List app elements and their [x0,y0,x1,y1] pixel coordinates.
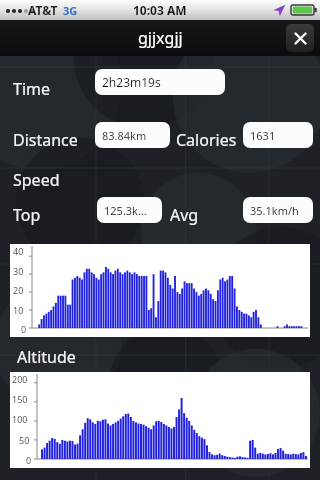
button[interactable]: 200 [10,372,310,468]
staticText: Time [13,78,51,100]
staticText: 20 [13,284,24,296]
staticText: 3G [63,3,78,18]
button[interactable]: 83.84km [95,122,170,148]
staticText: Speed [13,169,60,191]
staticText: 125.3k… [104,203,147,218]
button[interactable]: 125.3k… [97,197,162,223]
staticText: 100 [12,413,28,425]
staticText: 1631 [250,128,276,143]
staticText: Distance [13,129,78,151]
button[interactable]: Close [286,24,314,52]
staticText: 10 [13,304,24,316]
staticText: 0 [21,323,27,335]
button[interactable]: 35.1km/h [243,197,313,223]
staticText: 150 [12,393,28,405]
staticText: 200 [12,373,28,385]
button[interactable]: 40 [10,244,310,337]
staticText: 2h23m19s [102,74,161,90]
staticText: 40 [13,245,24,257]
staticText: 30 [13,265,24,277]
button[interactable]: 2h23m19s [95,69,225,95]
staticText: gjjxgjj [138,27,183,49]
staticText: Top [13,204,41,226]
staticText: 35.1km/h [250,203,299,218]
staticText: 50 [19,434,30,446]
staticText: 0 [26,454,32,466]
staticText: Altitude [17,346,76,368]
staticText: Calories [176,129,237,151]
button[interactable]: 1631 [243,122,313,148]
staticText: 10:03 AM [133,2,187,18]
staticText: Avg [170,204,199,226]
staticText: 83.84km [102,128,147,143]
staticText: AT&T [28,2,58,18]
